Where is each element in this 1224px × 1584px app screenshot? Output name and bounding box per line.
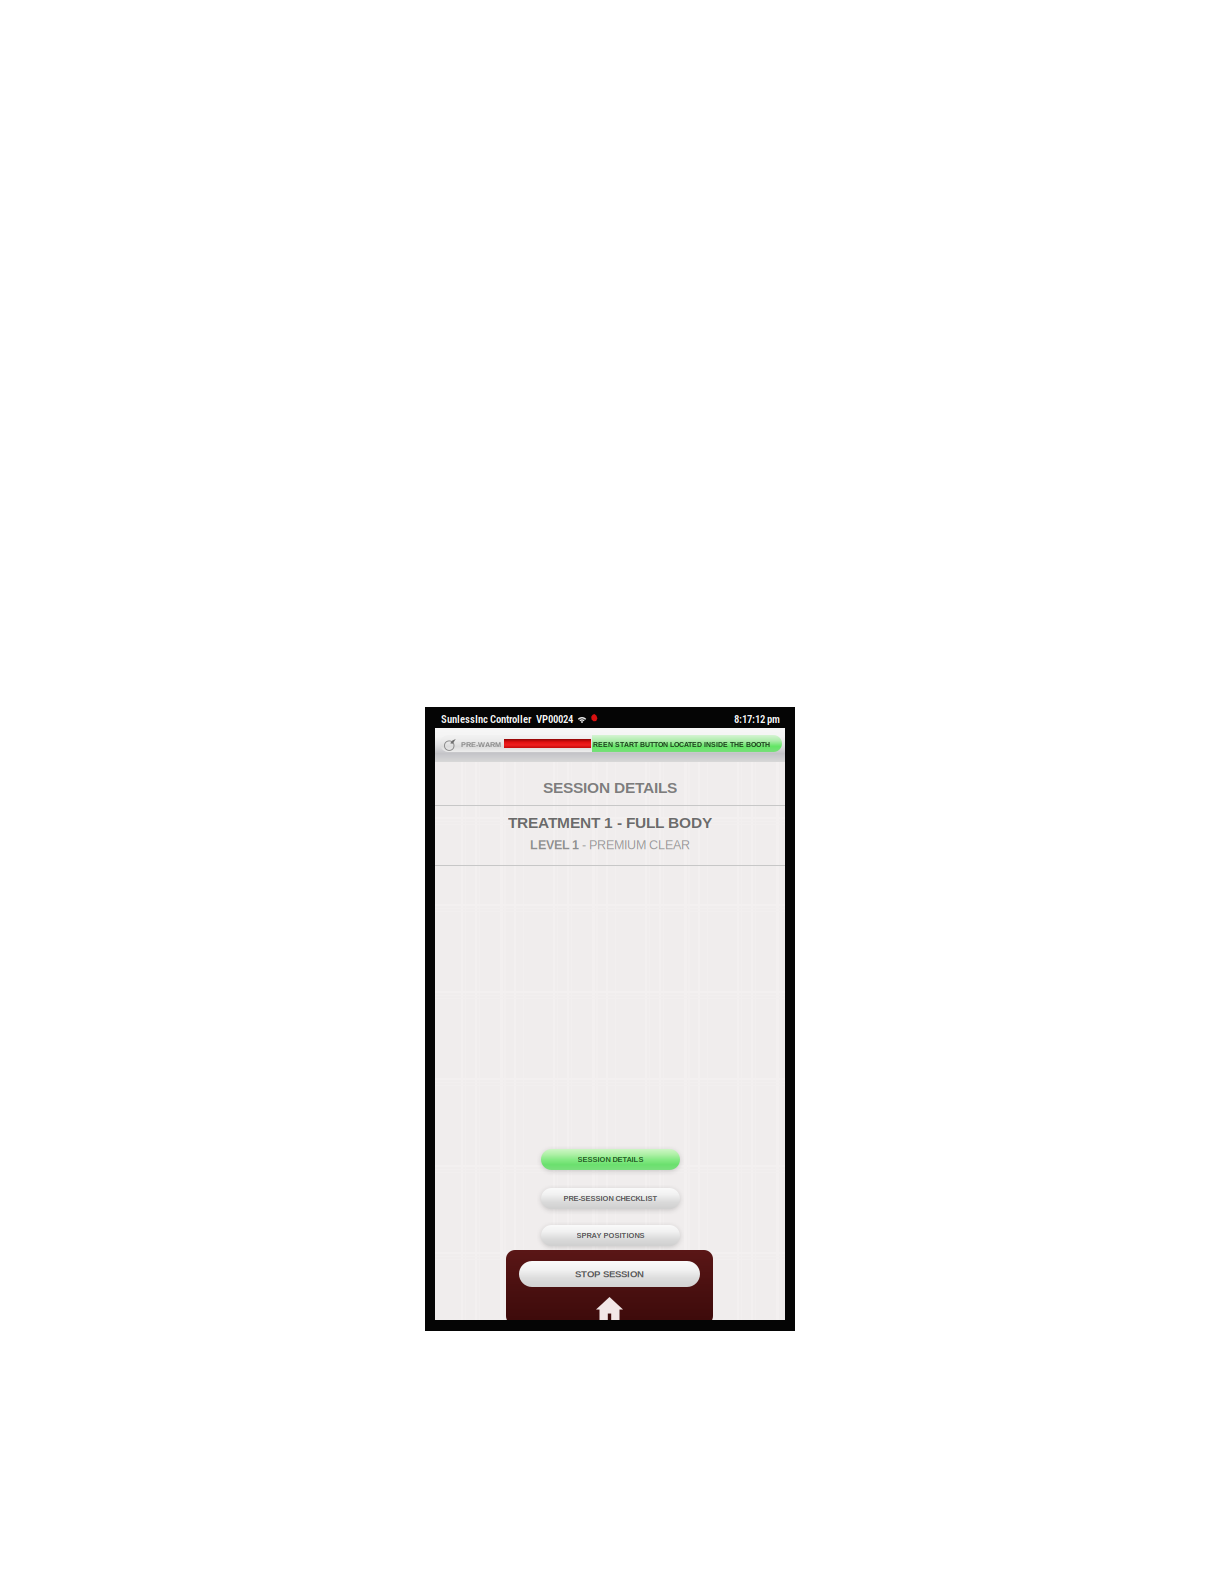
staticText: PRE-WARM [461,741,501,749]
staticText: STOP SESSION [575,1269,644,1279]
staticText: PRE-SESSION CHECKLIST [563,1194,657,1203]
staticText: REEN START BUTTON LOCATED INSIDE THE BOO… [593,741,770,748]
staticText: SunlessInc Controller VP00024 [441,713,573,725]
button[interactable]: SESSION DETAILS [541,1149,680,1170]
staticText: 8:17:12 pm [734,713,780,725]
button[interactable]: Home [596,1297,623,1320]
button[interactable]: SPRAY POSITIONS [541,1225,680,1246]
button[interactable]: PRE-SESSION CHECKLIST [541,1188,680,1209]
staticText: SESSION DETAILS [577,1155,643,1164]
staticText: TREATMENT 1 - FULL BODY [508,814,712,831]
button[interactable]: STOP SESSION [519,1261,700,1287]
staticText: LEVEL 1 [530,838,579,852]
staticText: SESSION DETAILS [543,779,677,796]
staticText: SPRAY POSITIONS [576,1231,644,1240]
staticText: - PREMIUM CLEAR [579,838,690,852]
